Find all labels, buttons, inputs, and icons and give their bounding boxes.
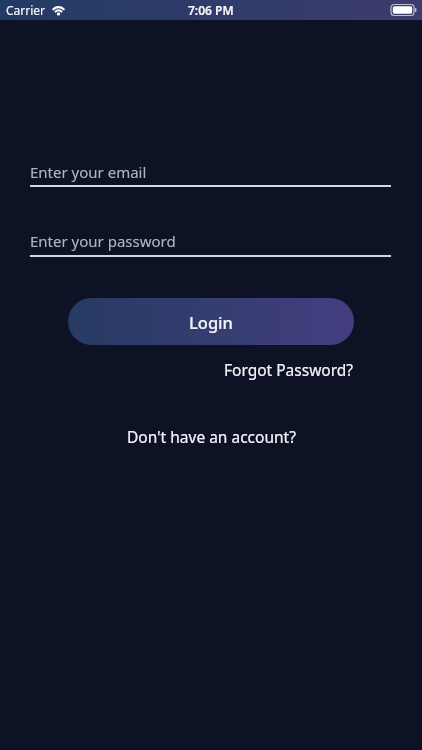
button[interactable]: Enter your password <box>30 231 391 257</box>
button[interactable]: Don't have an account? <box>127 426 296 447</box>
staticText: Don't have an account? <box>127 426 296 447</box>
button[interactable]: Enter your email <box>30 162 391 187</box>
staticText: Carrier <box>6 2 46 18</box>
staticText: Enter your password <box>30 231 176 251</box>
button[interactable]: Login <box>68 298 354 345</box>
staticText: Login <box>189 311 233 333</box>
staticText: 7:06 PM <box>188 2 234 18</box>
button[interactable]: Forgot Password? <box>224 359 354 380</box>
staticText: Forgot Password? <box>224 359 354 380</box>
staticText: Enter your email <box>30 162 147 182</box>
